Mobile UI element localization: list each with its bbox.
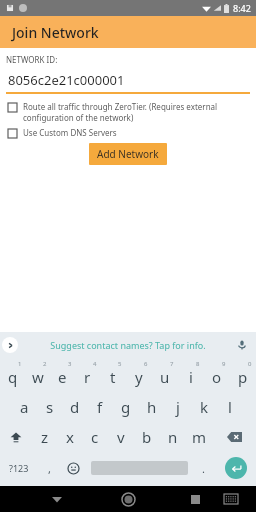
button[interactable]: b — [134, 422, 160, 452]
button[interactable]: Enter — [216, 452, 256, 484]
staticText: 9 — [222, 360, 226, 368]
button[interactable]: e — [50, 358, 75, 392]
button[interactable]: q — [0, 358, 25, 392]
button[interactable]: y — [126, 358, 152, 392]
button[interactable]: o — [204, 358, 230, 392]
staticText: z — [41, 427, 49, 447]
button[interactable]: t — [100, 358, 126, 392]
staticText: Route all traffic through ZeroTier. (Req… — [23, 101, 218, 123]
button[interactable]: Voice input — [235, 338, 249, 352]
staticText: e — [58, 367, 67, 387]
button[interactable]: 8056c2e21c000001 — [6, 71, 250, 94]
staticText: Add Network — [97, 147, 159, 161]
staticText: q — [8, 367, 18, 387]
staticText: w — [32, 367, 44, 387]
staticText: k — [200, 397, 209, 417]
button[interactable]: v — [108, 422, 134, 452]
staticText: 7 — [170, 360, 174, 368]
button[interactable]: Back — [52, 494, 62, 504]
button[interactable]: p — [230, 358, 256, 392]
staticText: j — [176, 397, 180, 417]
button[interactable]: ?123 — [0, 452, 38, 484]
button[interactable]: . — [191, 452, 216, 484]
staticText: g — [121, 397, 131, 417]
button[interactable]: Join Network — [0, 16, 256, 48]
button[interactable]: u — [152, 358, 178, 392]
button[interactable]: Home — [122, 493, 135, 506]
button[interactable]: z — [32, 422, 57, 452]
staticText: b — [142, 427, 152, 447]
button[interactable]: j — [165, 392, 191, 422]
staticText: v — [117, 427, 125, 447]
staticText: p — [238, 367, 248, 387]
button[interactable]: h — [139, 392, 165, 422]
button[interactable]: d — [62, 392, 87, 422]
button[interactable]: x — [57, 422, 82, 452]
staticText: f — [97, 397, 103, 417]
staticText: m — [192, 427, 207, 447]
button[interactable]: m — [186, 422, 212, 452]
button[interactable]: Route all traffic through ZeroTier. (Req… — [6, 101, 250, 123]
button[interactable]: n — [160, 422, 186, 452]
staticText: l — [228, 397, 232, 417]
button[interactable]: f — [87, 392, 113, 422]
staticText: . — [202, 461, 205, 476]
staticText: u — [160, 367, 170, 387]
staticText: s — [46, 397, 54, 417]
button[interactable]: Expand suggestions — [2, 337, 18, 353]
staticText: 8:42 — [233, 2, 251, 14]
button[interactable]: Keyboard switcher — [224, 494, 238, 504]
staticText: d — [70, 397, 80, 417]
staticText: ?123 — [9, 462, 29, 474]
staticText: r — [84, 367, 91, 387]
staticText: x — [66, 427, 74, 447]
staticText: 5 — [118, 360, 122, 368]
button[interactable]: Backspace — [212, 422, 256, 452]
button[interactable]: c — [82, 422, 108, 452]
staticText: Use Custom DNS Servers — [23, 127, 117, 138]
staticText: 0 — [248, 360, 252, 368]
staticText: 4 — [93, 360, 97, 368]
button[interactable]: l — [217, 392, 243, 422]
button[interactable]: w — [25, 358, 50, 392]
button[interactable]: , — [38, 452, 60, 484]
button[interactable]: a — [12, 392, 37, 422]
staticText: 6 — [144, 360, 148, 368]
staticText: NETWORK ID: — [6, 54, 58, 65]
button[interactable]: Use Custom DNS Servers — [6, 127, 250, 138]
staticText: , — [48, 461, 51, 476]
staticText: c — [91, 427, 99, 447]
button[interactable]: g — [113, 392, 139, 422]
staticText: h — [147, 397, 157, 417]
button[interactable]: Shift — [0, 422, 32, 452]
staticText: 8 — [196, 360, 200, 368]
button[interactable]: i — [178, 358, 204, 392]
staticText: 2 — [43, 360, 47, 368]
button[interactable]: Emoji — [60, 452, 87, 484]
button[interactable]: k — [191, 392, 217, 422]
staticText: a — [20, 397, 29, 417]
staticText: 8056c2e21c000001 — [8, 71, 125, 89]
staticText: y — [135, 367, 143, 387]
staticText: 3 — [68, 360, 72, 368]
button[interactable]: Space — [87, 452, 191, 484]
staticText: 1 — [18, 360, 22, 368]
button[interactable]: Suggest contact names? Tap for info. — [50, 339, 206, 351]
button[interactable]: s — [37, 392, 62, 422]
button[interactable]: Add Network — [89, 143, 167, 165]
staticText: o — [212, 367, 222, 387]
button[interactable]: r — [75, 358, 100, 392]
staticText: n — [168, 427, 178, 447]
staticText: i — [189, 367, 193, 387]
staticText: t — [110, 367, 116, 387]
staticText: Join Network — [12, 23, 99, 42]
